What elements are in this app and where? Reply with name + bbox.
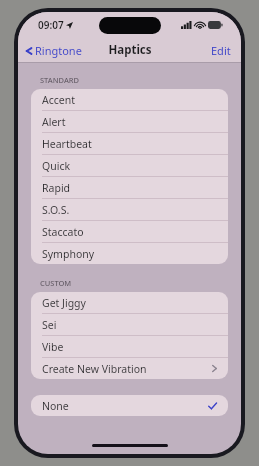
button[interactable]: Vibe bbox=[31, 336, 228, 358]
button[interactable]: Ringtone bbox=[18, 40, 88, 61]
button[interactable]: Rapid bbox=[31, 177, 228, 199]
button[interactable]: Symphony bbox=[31, 243, 228, 264]
button[interactable]: Accent bbox=[31, 89, 228, 111]
staticText: STANDARD bbox=[40, 75, 80, 85]
staticText: S.O.S. bbox=[42, 203, 70, 217]
staticText: Quick bbox=[42, 159, 71, 173]
staticText: 09:07 bbox=[38, 18, 64, 32]
staticText: Ringtone bbox=[35, 43, 82, 58]
staticText: Get Jiggy bbox=[42, 296, 86, 310]
staticText: None bbox=[42, 399, 208, 413]
staticText: Symphony bbox=[42, 247, 95, 261]
staticText: Accent bbox=[42, 93, 75, 107]
staticText: CUSTOM bbox=[40, 278, 72, 288]
button[interactable]: Get Jiggy bbox=[31, 292, 228, 314]
other: Selected bbox=[208, 402, 217, 410]
button[interactable]: Create New Vibration bbox=[31, 358, 228, 379]
button[interactable]: Alert bbox=[31, 111, 228, 133]
button[interactable]: Sei bbox=[31, 314, 228, 336]
staticText: Alert bbox=[42, 115, 66, 129]
staticText: Create New Vibration bbox=[42, 362, 212, 376]
button[interactable]: None bbox=[31, 395, 228, 416]
staticText: Sei bbox=[42, 318, 57, 332]
button[interactable]: S.O.S. bbox=[31, 199, 228, 221]
staticText: Rapid bbox=[42, 181, 71, 195]
button[interactable]: Quick bbox=[31, 155, 228, 177]
button[interactable]: Heartbeat bbox=[31, 133, 228, 155]
staticText: Vibe bbox=[42, 340, 64, 354]
button[interactable]: Edit bbox=[201, 40, 241, 61]
staticText: Haptics bbox=[108, 42, 152, 58]
staticText: Heartbeat bbox=[42, 137, 92, 151]
staticText: Staccato bbox=[42, 225, 84, 239]
staticText: Edit bbox=[211, 43, 231, 58]
button[interactable]: Staccato bbox=[31, 221, 228, 243]
